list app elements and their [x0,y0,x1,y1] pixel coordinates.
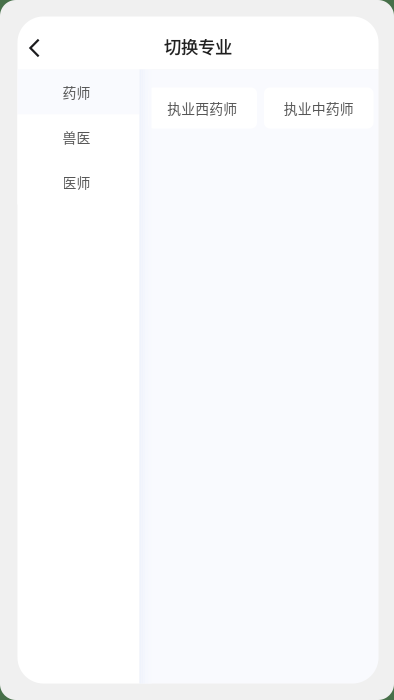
staticText: 兽医 [62,127,90,147]
staticText: 切换专业 [164,33,232,59]
button[interactable]: 兽医 [17,114,139,159]
staticText: 药师 [62,82,90,102]
staticText: 医师 [62,172,90,192]
button[interactable]: 执业西药师 [147,87,257,128]
button[interactable]: 医师 [17,159,139,204]
staticText: 执业中药师 [284,98,354,118]
button[interactable]: Back [19,16,49,69]
button[interactable]: 执业中药师 [264,87,373,128]
staticText: 执业西药师 [167,98,237,118]
button[interactable]: 药师 [17,69,139,114]
